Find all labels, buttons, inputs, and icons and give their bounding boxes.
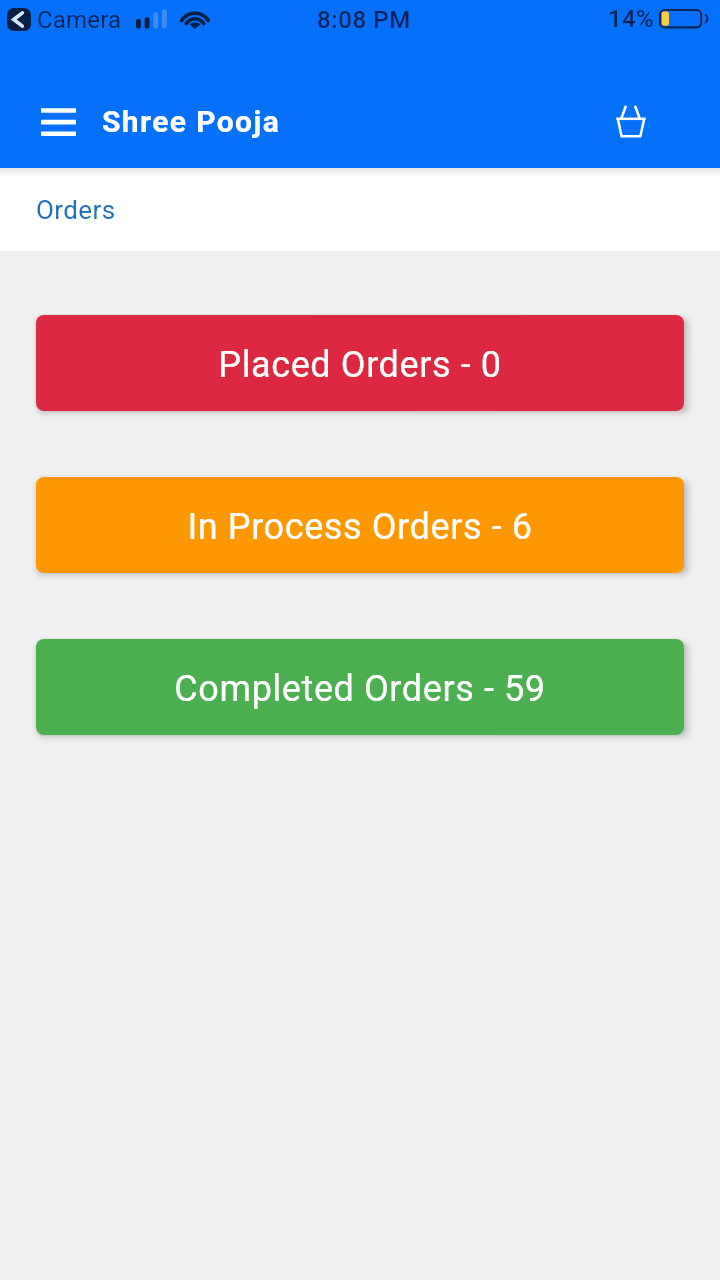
button[interactable]: Placed Orders - 0 xyxy=(36,315,684,411)
staticText: Orders xyxy=(36,195,116,225)
button[interactable]: Menu xyxy=(27,108,89,136)
staticText: Completed Orders - 59 xyxy=(174,668,546,710)
button[interactable]: Cart xyxy=(603,94,659,150)
button[interactable]: In Process Orders - 6 xyxy=(36,477,684,573)
staticText: Placed Orders - 0 xyxy=(218,344,502,386)
staticText: Shree Pooja xyxy=(102,104,281,139)
button[interactable]: Completed Orders - 59 xyxy=(36,639,684,735)
button[interactable]: Back to Camera xyxy=(7,8,31,31)
staticText: 8:08 PM xyxy=(317,6,411,34)
staticText: In Process Orders - 6 xyxy=(187,506,533,548)
staticText: 14% xyxy=(608,5,654,33)
staticText: Camera xyxy=(37,6,122,34)
